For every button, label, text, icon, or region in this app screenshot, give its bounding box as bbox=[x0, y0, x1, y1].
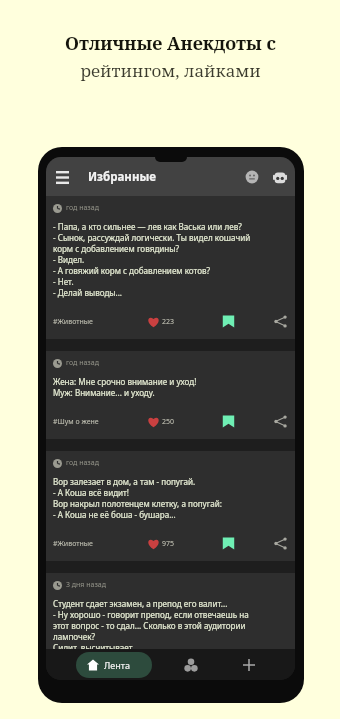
staticText: Вор накрыл полотенцем клетку, а попугай: bbox=[53, 498, 222, 509]
staticText: 223 bbox=[162, 317, 175, 327]
staticText: - Ну хорошо - говорит препод, если отвеч… bbox=[53, 609, 249, 620]
button[interactable]: Share bbox=[272, 313, 289, 330]
staticText: - А Коша всё видит! bbox=[53, 487, 130, 498]
staticText: корм с добавлением говядины? bbox=[53, 243, 179, 254]
button[interactable]: Share bbox=[272, 413, 289, 430]
button[interactable]: Random joke bbox=[270, 167, 290, 187]
button[interactable]: Share bbox=[272, 535, 289, 552]
staticText: - А Коша не её боша - бушара... bbox=[53, 509, 176, 520]
staticText: Сидит, высчитывает... bbox=[53, 642, 139, 649]
staticText: Муж: Внимание... и уходу. bbox=[53, 387, 155, 398]
staticText: Лента bbox=[104, 659, 130, 671]
button[interactable]: 223 bbox=[145, 313, 177, 330]
button[interactable]: Bookmark bbox=[220, 313, 237, 330]
staticText: год назад bbox=[66, 358, 99, 368]
button[interactable]: 250 bbox=[145, 413, 177, 430]
staticText: - Делай выводы... bbox=[53, 287, 123, 298]
staticText: рейтингом, лайками bbox=[80, 59, 261, 82]
staticText: #Шум о жене bbox=[53, 417, 99, 427]
button[interactable]: Bookmark bbox=[220, 413, 237, 430]
button[interactable]: Bookmark bbox=[220, 535, 237, 552]
staticText: - Сынок, рассуждай логически. Ты видел к… bbox=[53, 232, 251, 243]
button[interactable]: 975 bbox=[145, 535, 177, 552]
staticText: год назад bbox=[66, 458, 99, 468]
staticText: этот вопрос - то сдал... Сколько в этой … bbox=[53, 620, 246, 631]
button[interactable]: Menu bbox=[50, 165, 74, 189]
staticText: 3 дня назад bbox=[66, 580, 106, 590]
staticText: - А говяжий корм с добавлением котов? bbox=[53, 265, 211, 276]
staticText: 250 bbox=[162, 417, 175, 427]
staticText: год назад bbox=[66, 203, 99, 213]
staticText: #Животные bbox=[53, 539, 93, 549]
staticText: - Папа, а кто сильнее — лев как Васька и… bbox=[53, 221, 242, 232]
staticText: #Животные bbox=[53, 317, 93, 327]
staticText: Жена: Мне срочно внимание и уход! bbox=[53, 376, 197, 387]
staticText: Отличные Анекдоты с bbox=[65, 31, 276, 56]
staticText: - Нет. bbox=[53, 276, 74, 287]
button[interactable]: Лента bbox=[76, 652, 152, 678]
button[interactable]: Categories bbox=[180, 654, 202, 676]
staticText: Студент сдает экзамен, а препод его вали… bbox=[53, 598, 228, 609]
staticText: 975 bbox=[162, 539, 175, 549]
button[interactable]: Add joke bbox=[238, 654, 260, 676]
staticText: лампочек? bbox=[53, 631, 96, 642]
staticText: Вор залезает в дом, а там - попугай. bbox=[53, 476, 196, 487]
staticText: - Видел. bbox=[53, 254, 85, 265]
button[interactable]: Emoji bbox=[242, 167, 262, 187]
staticText: Избранные bbox=[88, 169, 156, 185]
